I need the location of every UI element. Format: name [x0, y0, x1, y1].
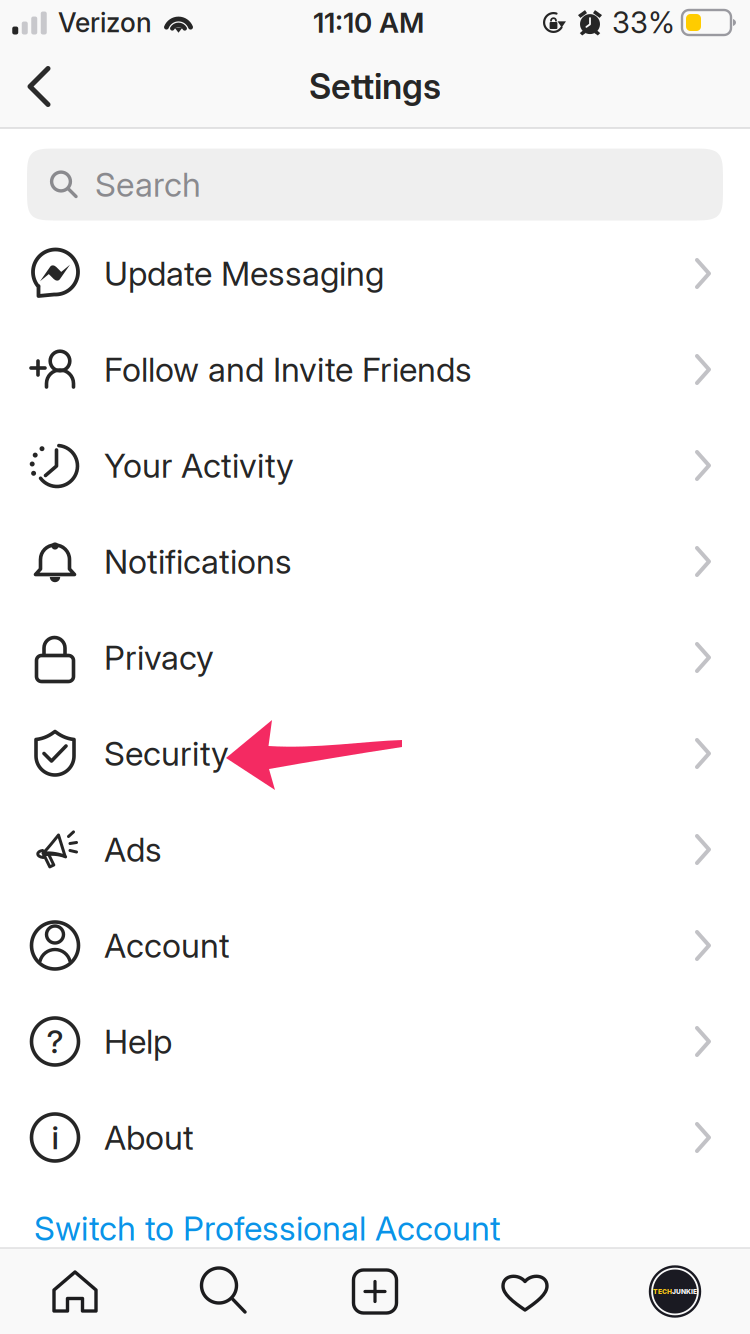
staticText: Follow and Invite Friends	[104, 349, 472, 390]
button[interactable]: Your Activity	[0, 417, 750, 513]
button[interactable]: New post	[300, 1248, 450, 1334]
staticText: i	[51, 1118, 58, 1157]
staticText: About	[104, 1117, 194, 1158]
button[interactable]: Back	[5, 50, 75, 122]
button[interactable]: Search	[150, 1248, 300, 1334]
staticText: ?	[46, 1022, 63, 1061]
button[interactable]: Search	[27, 148, 723, 220]
staticText: TECH	[653, 1287, 672, 1296]
staticText: Settings	[309, 65, 441, 107]
staticText: Switch to Professional Account	[34, 1208, 501, 1248]
staticText: Privacy	[104, 637, 214, 678]
button[interactable]: Privacy	[0, 609, 750, 705]
staticText: Update Messaging	[104, 253, 384, 294]
staticText: Security	[104, 733, 229, 774]
staticText: Search	[95, 164, 201, 205]
button[interactable]: Follow and Invite Friends	[0, 321, 750, 417]
button[interactable]: Security	[0, 705, 750, 801]
staticText: Notifications	[104, 541, 292, 582]
staticText: Help	[104, 1021, 172, 1062]
staticText: JUNKIE	[672, 1287, 697, 1296]
staticText: 11:10 AM	[313, 6, 424, 39]
staticText: Verizon	[58, 6, 152, 39]
button[interactable]: Ads	[0, 801, 750, 897]
staticText: 33%	[612, 5, 675, 40]
staticText: Ads	[104, 829, 162, 870]
staticText: Your Activity	[104, 445, 294, 486]
button[interactable]: Activity	[450, 1248, 600, 1334]
button[interactable]: Home	[0, 1248, 150, 1334]
button[interactable]: Account	[0, 897, 750, 993]
button[interactable]: Notifications	[0, 513, 750, 609]
staticText: Account	[104, 925, 230, 966]
button[interactable]: Switch to Professional Account	[0, 1185, 750, 1247]
button[interactable]: Profile	[600, 1248, 750, 1334]
button[interactable]: ?	[0, 993, 750, 1089]
button[interactable]: i	[0, 1089, 750, 1185]
button[interactable]: Update Messaging	[0, 225, 750, 321]
